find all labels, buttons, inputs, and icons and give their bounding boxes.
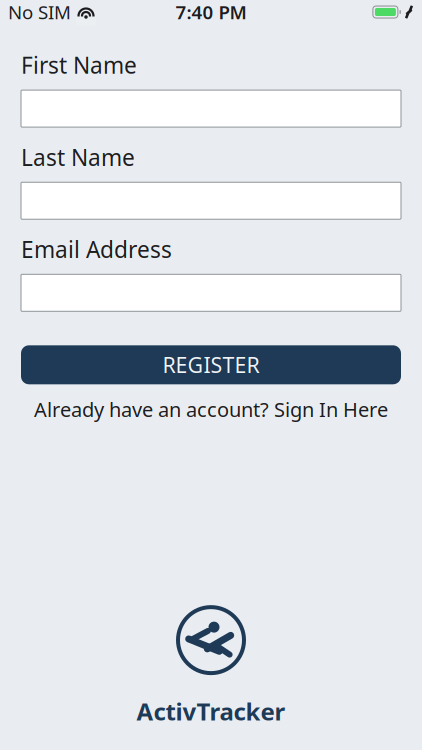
staticText: No SIM bbox=[8, 0, 71, 24]
button[interactable]: REGISTER bbox=[21, 345, 401, 384]
staticText: First Name bbox=[21, 50, 137, 80]
staticText: Already have an account? Sign In Here bbox=[34, 396, 388, 423]
button[interactable]: Already have an account? Sign In Here bbox=[21, 398, 401, 420]
staticText: ActivTracker bbox=[136, 695, 285, 727]
staticText: 7:40 PM bbox=[175, 0, 246, 24]
staticText: Last Name bbox=[21, 142, 135, 172]
staticText: Email Address bbox=[21, 234, 172, 264]
staticText: REGISTER bbox=[162, 351, 259, 379]
